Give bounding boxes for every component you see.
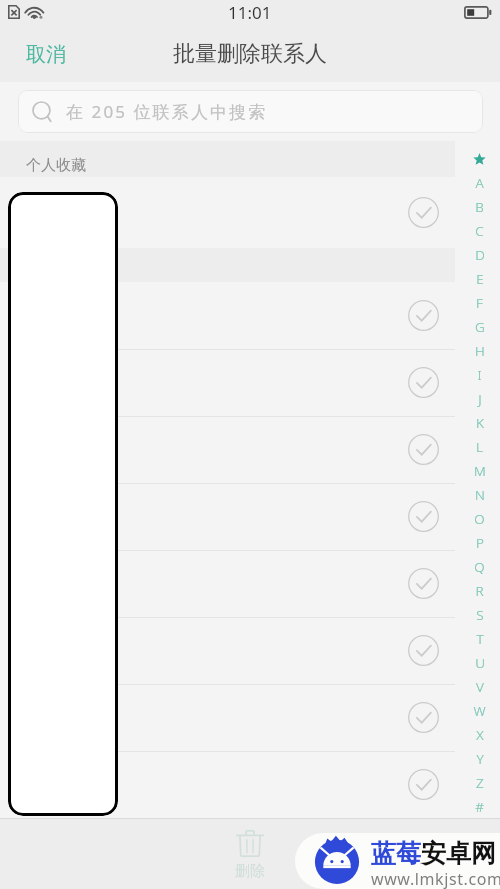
staticText: S [476, 606, 484, 624]
staticText: K [476, 414, 484, 432]
other: Select contact [408, 769, 439, 800]
staticText: P [476, 534, 484, 552]
staticText: E [476, 270, 484, 288]
button[interactable]: Select contact [0, 349, 500, 416]
other: Select contact [408, 568, 439, 599]
button[interactable]: Select contact [0, 177, 500, 248]
staticText: 删除 [235, 862, 265, 881]
staticText: # [475, 798, 484, 816]
staticText: U [475, 654, 485, 672]
button[interactable]: Select contact [0, 617, 500, 684]
other: Select contact [408, 300, 439, 331]
other: Select contact [408, 197, 439, 228]
staticText: O [474, 510, 485, 528]
staticText: www.lmkjst.com [371, 868, 500, 889]
staticText: 批量删除联系人 [173, 40, 327, 68]
staticText: A [475, 174, 484, 192]
staticText: Q [474, 558, 485, 576]
staticText: 11:01 [228, 1, 272, 24]
button[interactable]: Select contact [0, 684, 500, 751]
button[interactable]: Select contact [0, 550, 500, 617]
button[interactable]: 在 205 位联系人中搜索 [18, 90, 483, 133]
staticText: F [476, 294, 483, 312]
staticText: M [474, 462, 486, 480]
staticText: J [478, 390, 482, 408]
staticText: 安卓网 [421, 838, 496, 869]
staticText: X [476, 726, 484, 744]
other: Select contact [408, 635, 439, 666]
button[interactable]: Select contact [0, 282, 500, 349]
staticText: 在 205 位联系人中搜索 [66, 100, 268, 123]
staticText: V [476, 678, 484, 696]
button[interactable]: Select contact [0, 416, 500, 483]
staticText: 个人收藏 [26, 156, 86, 175]
button[interactable]: Delete [235, 830, 265, 881]
staticText: G [475, 318, 485, 336]
other: Select contact [408, 434, 439, 465]
staticText: B [475, 198, 484, 216]
button[interactable]: 取消 [0, 34, 86, 75]
button[interactable]: Select contact [0, 483, 500, 550]
button[interactable]: Select contact [0, 751, 500, 818]
staticText: R [475, 582, 484, 600]
staticText: 取消 [26, 42, 66, 67]
staticText: L [476, 438, 483, 456]
staticText: W [473, 702, 486, 720]
staticText: N [475, 486, 485, 504]
staticText: I [477, 366, 482, 384]
staticText: H [475, 342, 485, 360]
staticText: C [475, 222, 484, 240]
other: Select contact [408, 367, 439, 398]
staticText: Y [476, 750, 484, 768]
other: Select contact [408, 702, 439, 733]
staticText: 蓝莓 [371, 838, 421, 869]
staticText: Z [476, 774, 484, 792]
staticText: T [476, 630, 484, 648]
staticText: D [475, 246, 485, 264]
other: Select contact [408, 501, 439, 532]
button[interactable]: Alphabet index [459, 148, 500, 819]
